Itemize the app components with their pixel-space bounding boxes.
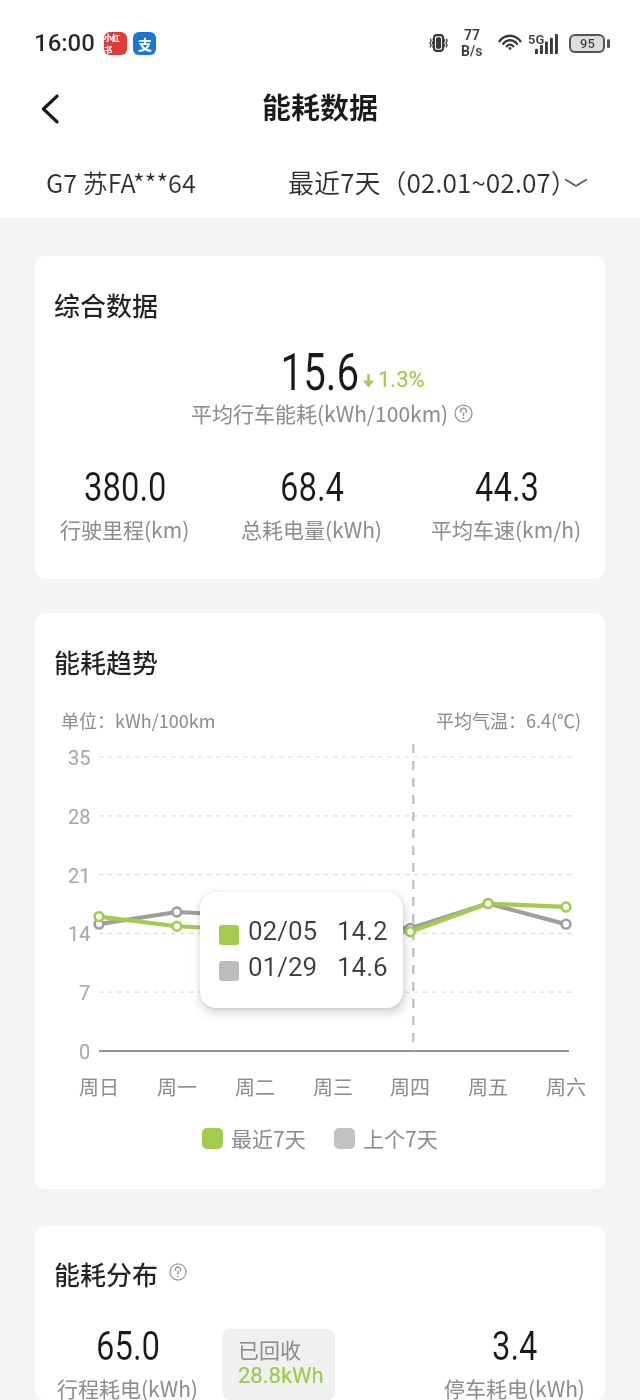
staticText: G7 苏FA***64 bbox=[46, 164, 196, 200]
staticText: 02/05 bbox=[248, 916, 318, 946]
button[interactable]: 上个7天 bbox=[334, 1123, 438, 1153]
staticText: 周一 bbox=[157, 1072, 197, 1101]
staticText: 3.4 bbox=[492, 1323, 538, 1370]
staticText: 5G bbox=[528, 32, 545, 47]
staticText: 周日 bbox=[79, 1072, 119, 1101]
staticText: 14.6 bbox=[337, 952, 388, 982]
staticText: 最近7天（02.01~02.07） bbox=[288, 163, 577, 201]
button[interactable]: 最近7天（02.01~02.07） bbox=[288, 163, 577, 201]
staticText: 停车耗电(kWh) bbox=[444, 1373, 585, 1400]
staticText: 小红书 bbox=[104, 32, 127, 55]
staticText: 15.6 bbox=[280, 343, 359, 403]
staticText: 总耗电量(kWh) bbox=[241, 514, 382, 544]
button[interactable]: 最近7天 bbox=[202, 1123, 306, 1153]
staticText: 最近7天 bbox=[231, 1123, 306, 1153]
button[interactable]: Change date range bbox=[565, 171, 587, 193]
staticText: 14 bbox=[68, 922, 91, 945]
staticText: 平均车速(km/h) bbox=[431, 514, 582, 544]
staticText: 380.0 bbox=[84, 464, 167, 511]
button[interactable]: Back bbox=[22, 78, 80, 136]
staticText: 01/29 bbox=[248, 952, 318, 982]
staticText: 28.8kWh bbox=[238, 1363, 324, 1389]
staticText: 14.2 bbox=[337, 916, 388, 946]
staticText: 28 bbox=[68, 805, 91, 828]
staticText: 77 bbox=[464, 27, 481, 43]
staticText: 行驶里程(km) bbox=[60, 514, 190, 544]
staticText: 单位：kWh/100km bbox=[61, 707, 216, 733]
staticText: B/s bbox=[461, 43, 483, 59]
staticText: 95 bbox=[580, 36, 595, 51]
staticText: 能耗分布 bbox=[54, 1255, 159, 1293]
staticText: 行程耗电(kWh) bbox=[57, 1373, 198, 1400]
staticText: 能耗趋势 bbox=[54, 643, 159, 681]
staticText: 21 bbox=[68, 864, 91, 887]
staticText: 周五 bbox=[468, 1072, 508, 1101]
staticText: 周四 bbox=[390, 1072, 430, 1101]
staticText: 16:00 bbox=[34, 29, 95, 57]
staticText: 已回收 bbox=[238, 1334, 301, 1364]
staticText: 44.3 bbox=[475, 464, 539, 511]
staticText: 周三 bbox=[313, 1072, 353, 1101]
staticText: 65.0 bbox=[96, 1323, 160, 1370]
staticText: 上个7天 bbox=[363, 1123, 438, 1153]
staticText: 平均气温：6.4(℃) bbox=[436, 707, 582, 733]
staticText: 能耗数据 bbox=[262, 85, 379, 127]
staticText: 68.4 bbox=[280, 464, 344, 511]
staticText: 综合数据 bbox=[54, 286, 159, 324]
staticText: 1.3% bbox=[378, 367, 425, 393]
staticText: 0 bbox=[79, 1040, 91, 1063]
staticText: 平均行车能耗(kWh/100km) bbox=[191, 398, 449, 428]
staticText: 支 bbox=[138, 34, 152, 54]
button[interactable]: G7 苏FA***64 bbox=[46, 164, 196, 200]
staticText: 35 bbox=[68, 746, 91, 769]
staticText: 周六 bbox=[546, 1072, 586, 1101]
staticText: 7 bbox=[79, 981, 91, 1004]
staticText: 周二 bbox=[235, 1072, 275, 1101]
